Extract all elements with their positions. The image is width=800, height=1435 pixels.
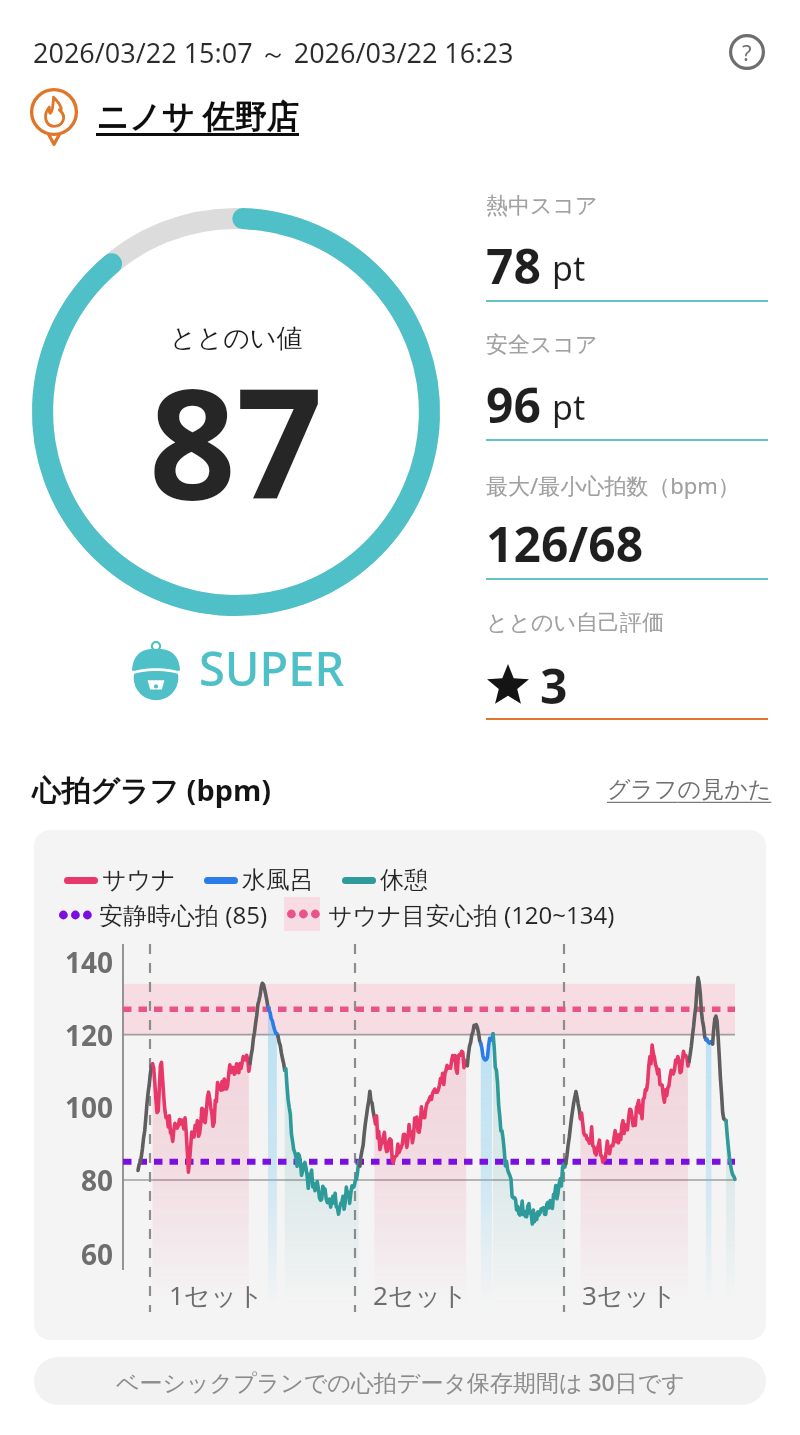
button[interactable]: ベーシックプランでの心拍データ保存期間は 30日です bbox=[34, 1357, 766, 1405]
staticText: 2セット bbox=[373, 1277, 468, 1313]
staticText: 熱中スコア bbox=[486, 192, 598, 220]
staticText: サウナ bbox=[102, 865, 176, 895]
staticText: 安静時心拍 (85) bbox=[99, 898, 268, 931]
staticText: 78 bbox=[486, 233, 541, 298]
staticText: ととのい自己評価 bbox=[486, 609, 665, 637]
staticText: ニノサ 佐野店 bbox=[96, 94, 299, 138]
staticText: 140 bbox=[65, 943, 114, 981]
staticText: 3セット bbox=[582, 1277, 677, 1313]
staticText: 126/68 bbox=[486, 511, 644, 576]
staticText: 60 bbox=[81, 1235, 114, 1273]
staticText: 水風呂 bbox=[242, 865, 314, 895]
staticText: ベーシックプランでの心拍データ保存期間は 30日です bbox=[116, 1366, 685, 1397]
staticText: 80 bbox=[81, 1161, 114, 1199]
staticText: 96 bbox=[486, 372, 541, 437]
staticText: 2026/03/22 15:07 ～ 2026/03/22 16:23 bbox=[33, 34, 514, 71]
staticText: pt bbox=[552, 384, 586, 430]
staticText: 心拍グラフ (bpm) bbox=[32, 770, 272, 810]
staticText: ととのい値 bbox=[170, 322, 303, 355]
staticText: 120 bbox=[65, 1016, 114, 1054]
staticText: ? bbox=[742, 37, 752, 67]
staticText: 休憩 bbox=[380, 865, 428, 895]
button[interactable]: Help bbox=[718, 23, 776, 81]
button[interactable]: ニノサ 佐野店 bbox=[26, 86, 299, 142]
staticText: pt bbox=[552, 245, 586, 291]
staticText: 安全スコア bbox=[486, 331, 598, 359]
button[interactable]: グラフの見かた bbox=[607, 775, 772, 804]
staticText: SUPER bbox=[199, 636, 345, 700]
staticText: 最大/最小心拍数（bpm） bbox=[486, 470, 740, 500]
staticText: 100 bbox=[65, 1088, 114, 1126]
staticText: 87 bbox=[149, 337, 323, 544]
staticText: サウナ目安心拍 (120~134) bbox=[328, 898, 615, 931]
staticText: グラフの見かた bbox=[607, 775, 772, 804]
staticText: 3 bbox=[540, 653, 568, 718]
staticText: 1セット bbox=[169, 1277, 264, 1313]
